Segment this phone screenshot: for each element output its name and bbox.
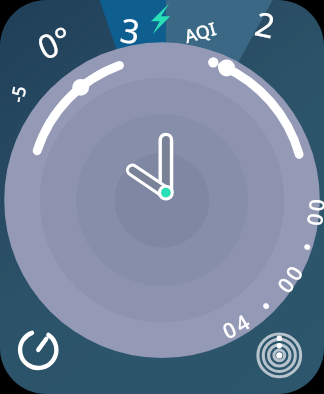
- button[interactable]: Stopwatch: [12, 324, 68, 380]
- button[interactable]: Air quality complication: [178, 6, 318, 98]
- button[interactable]: Activity rings: [254, 326, 310, 382]
- button[interactable]: Temperature complication: [10, 6, 160, 98]
- button[interactable]: Temperature complication: [0, 0, 324, 394]
